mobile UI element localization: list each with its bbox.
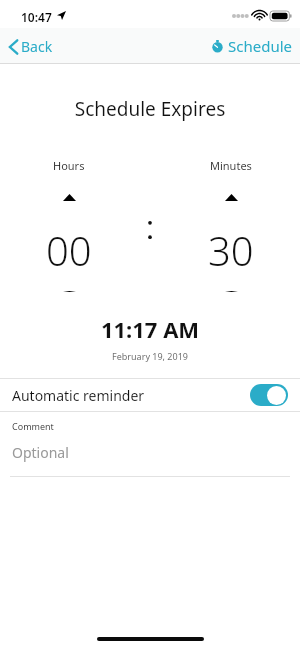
staticText: Hours <box>53 158 85 173</box>
staticText: Comment <box>12 420 54 432</box>
other: Automatic reminder toggle <box>250 384 288 406</box>
staticText: February 19, 2019 <box>0 350 300 362</box>
button[interactable]: Increase Minutes <box>211 187 251 207</box>
button[interactable]: Decrease Minutes <box>211 291 251 292</box>
staticText: Schedule <box>228 36 292 56</box>
staticText: 10:47 <box>21 9 52 25</box>
staticText: Automatic reminder <box>12 386 145 405</box>
staticText: Optional <box>12 443 69 462</box>
button[interactable]: Back <box>0 31 63 62</box>
staticText: Back <box>21 37 53 56</box>
button[interactable]: Schedule <box>201 30 300 62</box>
staticText: 11:17 AM <box>0 314 300 344</box>
staticText: Schedule Expires <box>0 96 300 122</box>
button[interactable]: Automatic reminder <box>0 379 300 411</box>
staticText: Minutes <box>210 158 252 173</box>
button[interactable]: Decrease Hours <box>49 291 89 292</box>
staticText: 30 <box>208 223 254 277</box>
staticText: 00 <box>46 223 92 277</box>
button[interactable]: Increase Hours <box>49 187 89 207</box>
button[interactable]: Comment <box>0 420 300 462</box>
